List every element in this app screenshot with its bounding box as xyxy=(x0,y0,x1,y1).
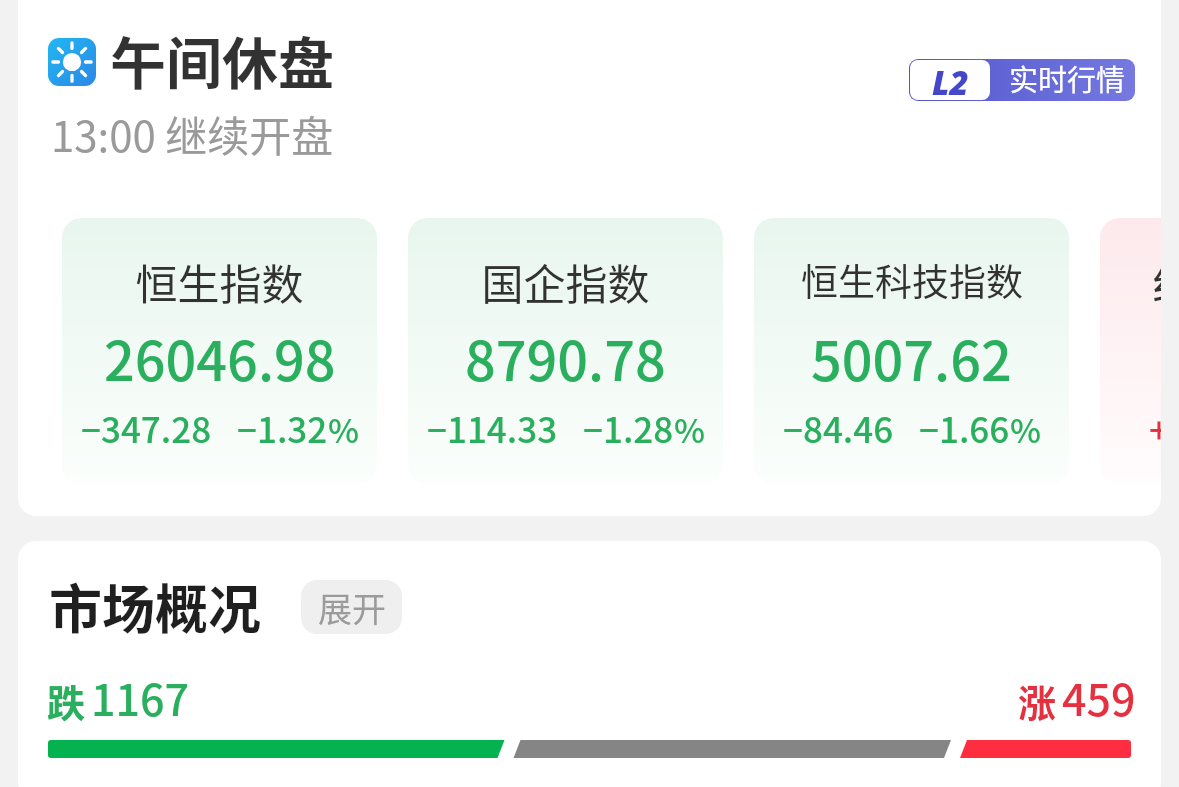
staticText: % xyxy=(328,405,359,453)
staticText: 8790.78 xyxy=(465,318,666,396)
button[interactable]: 恒生指数 xyxy=(62,218,377,484)
staticText: % xyxy=(1010,405,1041,453)
staticText: 市场概况 xyxy=(49,568,261,645)
staticText: 实时行情 xyxy=(1009,59,1126,99)
button[interactable]: 恒生科技指数 xyxy=(754,218,1069,484)
staticText: % xyxy=(674,405,705,453)
staticText: 13:00 继续开盘 xyxy=(51,103,334,164)
button[interactable]: 市场概况 xyxy=(49,568,261,645)
staticText: 红筹股指数 xyxy=(1152,251,1161,312)
staticText: 跌 xyxy=(47,673,86,728)
button[interactable]: L2 xyxy=(909,59,1135,101)
staticText: 午间休盘 xyxy=(110,19,334,100)
staticText: 5007.62 xyxy=(811,318,1012,396)
staticText: 展开 xyxy=(318,583,386,632)
staticText: 1167 xyxy=(91,666,190,728)
staticText: −84.46 xyxy=(783,402,894,453)
staticText: 恒生指数 xyxy=(135,251,304,312)
staticText: 恒生科技指数 xyxy=(801,253,1023,307)
button[interactable]: 红筹股指数 xyxy=(1100,218,1161,484)
staticText: −347.28 xyxy=(81,402,212,453)
staticText: −1.32 xyxy=(237,402,328,453)
button[interactable]: Trading session status xyxy=(48,38,96,86)
staticText: 涨 xyxy=(1018,673,1057,728)
staticText: −114.33 xyxy=(427,402,558,453)
staticText: +8.64 xyxy=(1149,402,1161,453)
button[interactable]: 国企指数 xyxy=(408,218,723,484)
staticText: −1.66 xyxy=(919,402,1010,453)
staticText: 国企指数 xyxy=(481,251,650,312)
other: Advance decline breadth bar xyxy=(48,740,1131,758)
staticText: 459 xyxy=(1062,666,1136,728)
staticText: 26046.98 xyxy=(104,318,336,396)
button[interactable]: 午间休盘 xyxy=(110,19,334,100)
button[interactable]: 展开 xyxy=(301,580,402,634)
staticText: −1.28 xyxy=(583,402,674,453)
staticText: L2 xyxy=(932,60,969,100)
